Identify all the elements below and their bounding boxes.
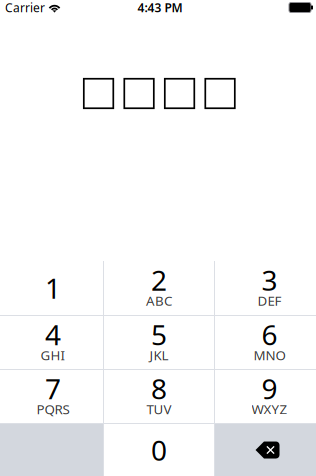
staticText: 6: [261, 316, 277, 353]
staticText: 4: [45, 316, 61, 353]
staticText: 9: [261, 370, 277, 407]
button[interactable]: 4: [0, 316, 103, 369]
staticText: Carrier: [5, 0, 45, 15]
staticText: 2: [151, 261, 167, 299]
staticText: 3: [261, 261, 277, 299]
staticText: 4:43 PM: [137, 0, 182, 15]
button[interactable]: 5: [104, 316, 214, 369]
button[interactable]: 3: [215, 261, 316, 315]
button[interactable]: 6: [215, 316, 316, 369]
staticText: ABC: [146, 292, 172, 309]
staticText: MNO: [253, 346, 285, 364]
button[interactable]: 9: [215, 370, 316, 423]
button[interactable]: Delete: [215, 424, 316, 476]
staticText: 1: [45, 269, 61, 307]
staticText: 0: [151, 431, 167, 469]
staticText: GHI: [40, 346, 65, 364]
staticText: 8: [151, 370, 167, 407]
button[interactable]: 1: [0, 261, 103, 315]
button[interactable]: 8: [104, 370, 214, 423]
staticText: DEF: [257, 292, 281, 309]
staticText: TUV: [146, 400, 171, 418]
staticText: PQRS: [36, 400, 69, 418]
staticText: WXYZ: [251, 400, 287, 418]
button[interactable]: 2: [104, 261, 214, 315]
staticText: 5: [151, 316, 167, 353]
button[interactable]: 0: [104, 424, 214, 476]
button[interactable]: 7: [0, 370, 103, 423]
staticText: JKL: [149, 346, 168, 364]
staticText: 7: [45, 370, 61, 407]
